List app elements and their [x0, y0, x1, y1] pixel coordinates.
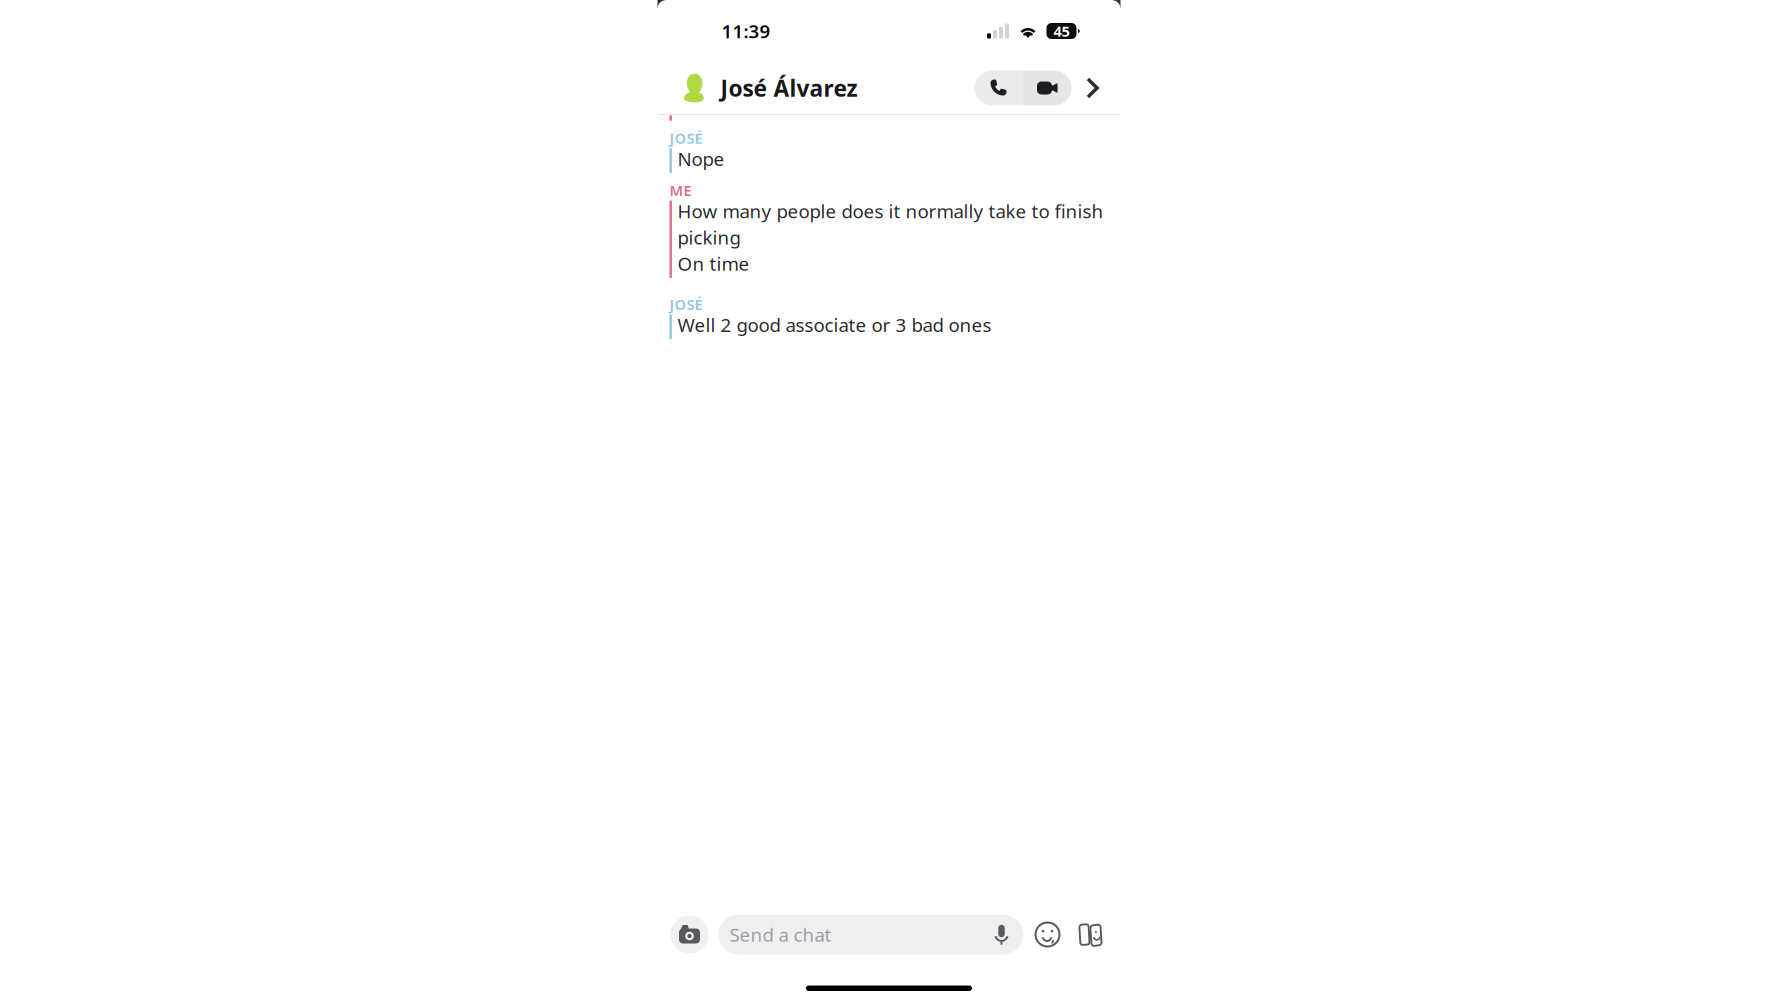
staticText: Nope — [677, 146, 724, 171]
staticText: 45 — [1053, 21, 1069, 41]
staticText: José Álvarez — [720, 73, 857, 103]
button[interactable]: Stickers — [1070, 914, 1110, 954]
staticText: On time — [677, 251, 749, 276]
staticText: Well 2 good associate or 3 bad ones — [677, 312, 991, 337]
staticText: Send a chat — [729, 922, 831, 947]
staticText: ME — [669, 181, 691, 200]
staticText: 11:39 — [721, 19, 770, 43]
button[interactable]: Voice call — [974, 70, 1022, 105]
button[interactable]: Emoji — [1027, 914, 1067, 954]
button[interactable]: José Álvarez — [683, 69, 857, 107]
staticText: JOSÉ — [669, 294, 702, 314]
button[interactable]: Send a chat — [718, 914, 1023, 954]
staticText: How many people does it normally take to… — [677, 199, 1103, 223]
staticText: picking — [677, 225, 740, 250]
staticText: JOSÉ — [669, 128, 702, 148]
button[interactable]: More options — [1080, 70, 1104, 105]
button[interactable]: Video call — [1022, 70, 1071, 105]
button[interactable]: Open camera — [670, 915, 708, 953]
